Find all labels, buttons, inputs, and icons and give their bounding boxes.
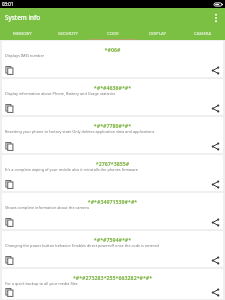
button[interactable]: Copy xyxy=(3,102,15,114)
button[interactable]: Copy xyxy=(3,216,15,228)
staticText: *#*#7594#*#* xyxy=(2,236,223,243)
staticText: *#06# xyxy=(2,46,223,53)
button[interactable]: Copy xyxy=(3,64,15,76)
staticText: *#*#7780#*#* xyxy=(2,122,223,129)
staticText: Resetting your phone to factory state On… xyxy=(5,129,219,134)
button[interactable]: *#*#273283*255*663282*#*#* xyxy=(2,269,223,299)
button[interactable]: *#*#34971539#*#* xyxy=(2,193,223,229)
button[interactable]: Share xyxy=(209,64,221,76)
staticText: DISPLAY xyxy=(149,31,166,37)
button[interactable]: SECURITY xyxy=(45,27,90,40)
staticText: *2767*3855# xyxy=(2,160,223,167)
staticText: *#*#273283*255*663282*#*#* xyxy=(2,274,223,281)
button[interactable]: Copy xyxy=(3,254,15,266)
staticText: CAMERA xyxy=(194,31,212,37)
staticText: MEMORY xyxy=(13,31,32,37)
staticText: *#*#4636#*#* xyxy=(2,84,223,91)
button[interactable]: DISPLAY xyxy=(135,27,180,40)
staticText: CODE xyxy=(107,31,119,37)
staticText: Changing the power button behavior Enabl… xyxy=(5,243,219,248)
button[interactable]: Share xyxy=(209,140,221,152)
staticText: *#*#34971539#*#* xyxy=(2,198,223,205)
staticText: 03:01 xyxy=(2,1,14,7)
button[interactable]: Copy xyxy=(3,140,15,152)
staticText: Displays IMEI number xyxy=(5,53,219,58)
button[interactable]: CODE xyxy=(90,27,135,40)
button[interactable]: *#*#4636#*#* xyxy=(2,79,223,115)
staticText: For a quick backup to all your media fil… xyxy=(5,281,219,286)
button[interactable]: Share xyxy=(209,216,221,228)
button[interactable]: CAMERA xyxy=(180,27,225,40)
staticText: Shows complete information about the cam… xyxy=(5,205,219,210)
button[interactable]: Share xyxy=(209,254,221,266)
button[interactable]: *2767*3855# xyxy=(2,155,223,191)
button[interactable]: MEMORY xyxy=(0,27,45,40)
staticText: SECURITY xyxy=(58,31,78,37)
button[interactable]: *#*#7594#*#* xyxy=(2,231,223,267)
staticText: System info xyxy=(5,13,41,22)
button[interactable]: *#06# xyxy=(2,41,223,77)
button[interactable]: Share xyxy=(209,178,221,190)
button[interactable]: Copy xyxy=(3,286,15,298)
staticText: It's a complete wiping of your mobile al… xyxy=(5,167,219,172)
staticText: Display information about Phone, Battery… xyxy=(5,91,219,96)
button[interactable]: Copy xyxy=(3,178,15,190)
button[interactable]: Share xyxy=(209,286,221,298)
button[interactable]: More options xyxy=(207,8,225,27)
button[interactable]: Share xyxy=(209,102,221,114)
button[interactable]: *#*#7780#*#* xyxy=(2,117,223,153)
